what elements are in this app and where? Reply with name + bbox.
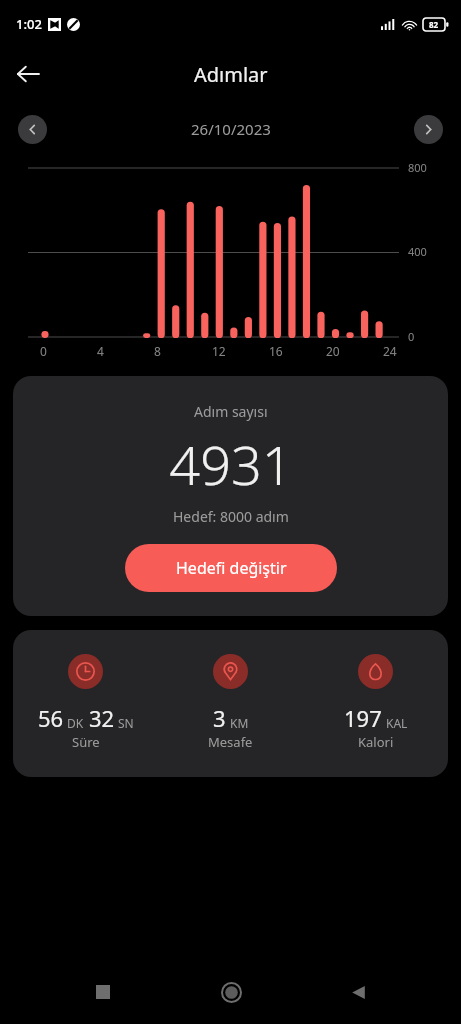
staticText: 1:02 <box>16 15 42 33</box>
staticText: 32 <box>89 703 115 733</box>
staticText: 0 <box>408 329 415 344</box>
button[interactable]: 56 <box>13 630 448 777</box>
staticText: 82 <box>429 19 439 30</box>
staticText: 197 <box>344 703 382 733</box>
button[interactable]: Next day <box>414 115 443 144</box>
staticText: SN <box>118 715 134 731</box>
staticText: KAL <box>386 715 408 731</box>
staticText: 56 <box>38 703 64 733</box>
staticText: 16 <box>269 343 283 359</box>
button[interactable]: Hedefi değiştir <box>125 544 337 592</box>
button[interactable]: Back <box>8 54 48 94</box>
staticText: 26/10/2023 <box>191 119 271 139</box>
staticText: Kalori <box>358 733 394 751</box>
button[interactable]: Previous day <box>18 115 47 144</box>
staticText: Hedef: 8000 adım <box>173 507 289 526</box>
button[interactable]: Recents <box>79 968 127 1016</box>
button[interactable]: Home <box>207 968 255 1016</box>
staticText: 800 <box>408 160 427 175</box>
staticText: 3 <box>213 703 226 733</box>
button[interactable]: Back <box>334 968 382 1016</box>
staticText: 4931 <box>169 427 293 501</box>
staticText: 8 <box>154 343 161 359</box>
staticText: Süre <box>72 733 100 751</box>
staticText: 24 <box>383 343 397 359</box>
staticText: DK <box>67 715 84 731</box>
staticText: 4 <box>97 343 104 359</box>
staticText: KM <box>230 715 249 731</box>
staticText: 12 <box>212 343 226 359</box>
staticText: 400 <box>408 244 427 259</box>
staticText: Adım sayısı <box>194 402 268 421</box>
staticText: Mesafe <box>208 733 253 751</box>
staticText: Adımlar <box>194 61 268 88</box>
staticText: Hedefi değiştir <box>176 557 287 579</box>
button[interactable]: Adım sayısı <box>13 376 448 616</box>
staticText: 0 <box>40 343 47 359</box>
staticText: 20 <box>326 343 340 359</box>
